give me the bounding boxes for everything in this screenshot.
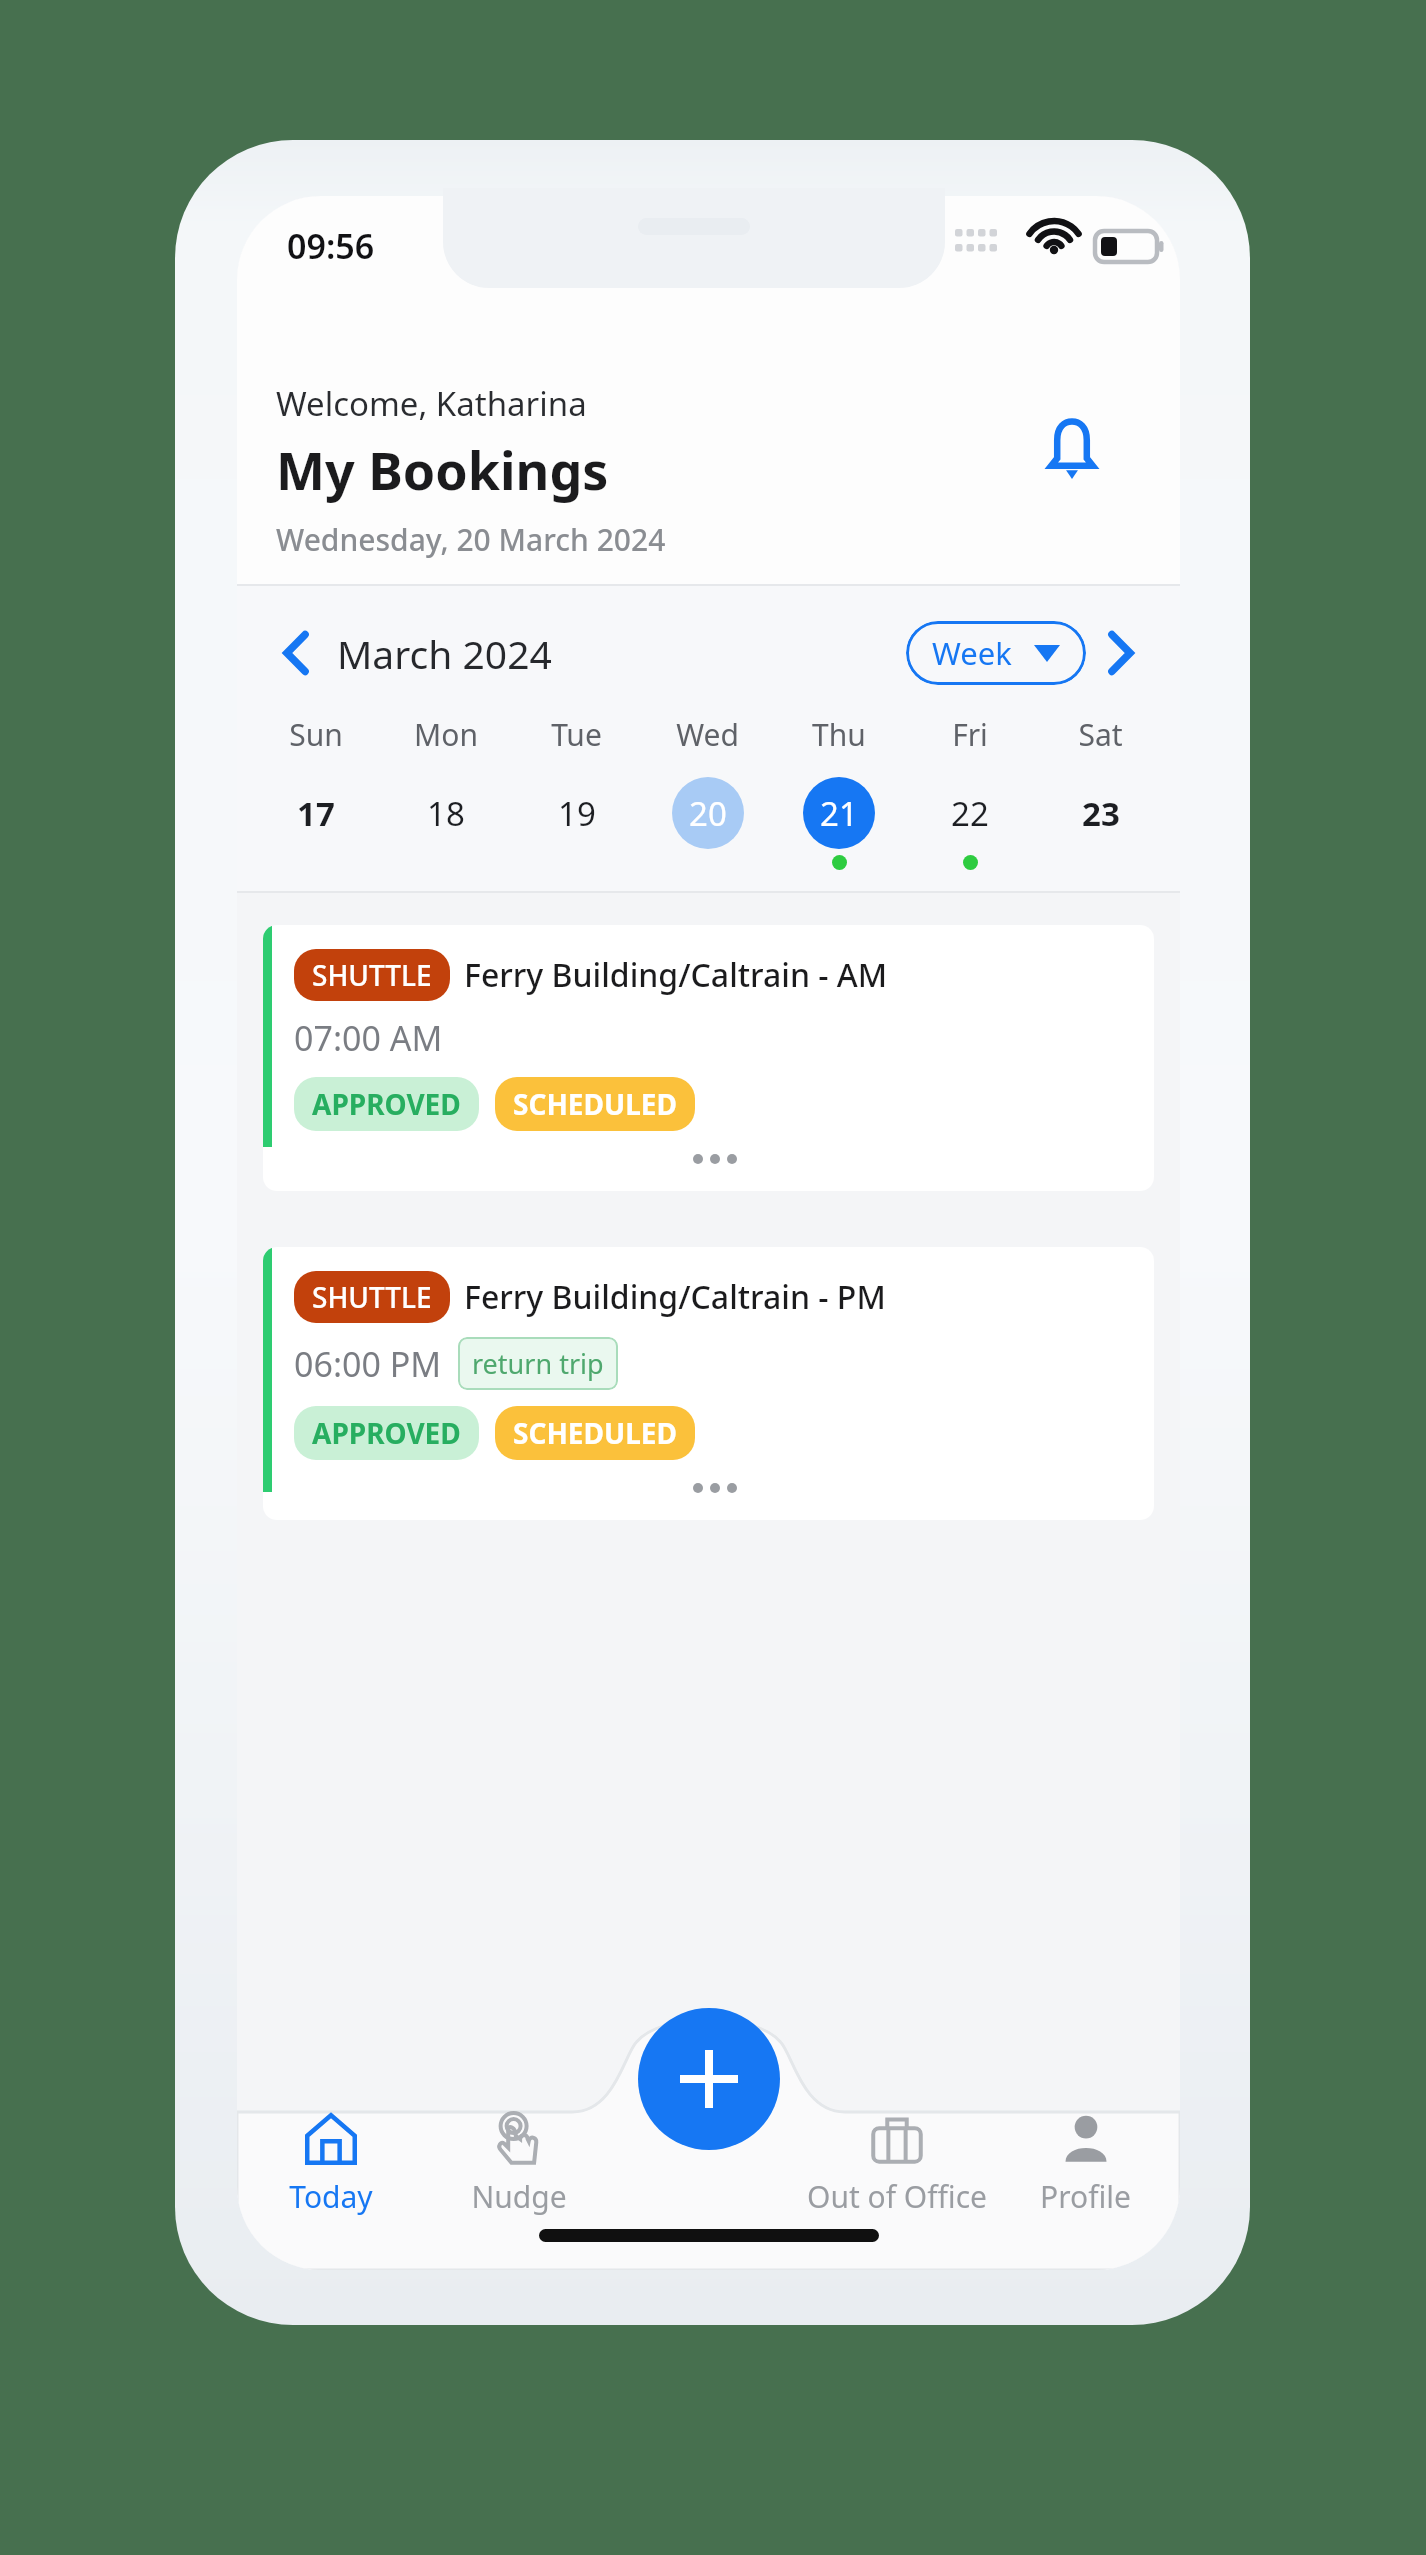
- button[interactable]: Profile: [991, 2102, 1180, 2223]
- staticText: SCHEDULED: [513, 1414, 677, 1452]
- staticText: SCHEDULED: [513, 1085, 677, 1123]
- button[interactable]: Add booking: [638, 2008, 780, 2150]
- staticText: Sun: [289, 714, 343, 755]
- button[interactable]: Thu: [773, 714, 904, 870]
- staticText: March 2024: [337, 627, 552, 680]
- staticText: 09:56: [287, 223, 375, 269]
- staticText: APPROVED: [312, 1085, 461, 1123]
- staticText: Welcome, Katharina: [276, 381, 587, 426]
- staticText: Profile: [1040, 2176, 1131, 2217]
- staticText: Tue: [551, 714, 602, 755]
- button[interactable]: Previous week: [261, 618, 331, 688]
- staticText: Ferry Building/Caltrain - AM: [464, 953, 888, 997]
- staticText: APPROVED: [312, 1414, 461, 1452]
- staticText: Thu: [812, 714, 866, 755]
- staticText: Sat: [1078, 714, 1123, 755]
- staticText: 20: [689, 791, 727, 836]
- button[interactable]: SHUTTLE: [263, 925, 1154, 1191]
- staticText: 17: [297, 791, 335, 836]
- staticText: Nudge: [471, 2176, 567, 2217]
- button[interactable]: Mon: [381, 714, 511, 870]
- staticText: Ferry Building/Caltrain - PM: [464, 1275, 886, 1319]
- staticText: 22: [951, 791, 989, 836]
- button[interactable]: More options: [680, 1470, 750, 1506]
- staticText: Wednesday, 20 March 2024: [276, 519, 666, 560]
- button[interactable]: More options: [680, 1141, 750, 1177]
- staticText: Week: [932, 632, 1012, 674]
- button[interactable]: Nudge: [425, 2102, 613, 2223]
- staticText: My Bookings: [276, 434, 609, 505]
- staticText: 21: [820, 791, 858, 836]
- button[interactable]: Sun: [251, 714, 381, 870]
- button[interactable]: SHUTTLE: [263, 1247, 1154, 1520]
- staticText: Wed: [676, 714, 739, 755]
- staticText: Fri: [952, 714, 988, 755]
- button[interactable]: Today: [237, 2102, 425, 2223]
- staticText: SHUTTLE: [312, 1278, 432, 1316]
- button[interactable]: Week: [906, 621, 1086, 685]
- staticText: 06:00 PM: [294, 1341, 442, 1387]
- button[interactable]: Out of Office: [802, 2102, 991, 2223]
- staticText: SHUTTLE: [312, 956, 432, 994]
- staticText: Out of Office: [807, 2176, 987, 2217]
- staticText: 23: [1082, 791, 1120, 836]
- staticText: Today: [289, 2176, 373, 2217]
- button[interactable]: Next week: [1086, 618, 1156, 688]
- button[interactable]: Tue: [511, 714, 642, 870]
- staticText: 07:00 AM: [294, 1015, 443, 1061]
- staticText: return trip: [472, 1345, 604, 1382]
- button[interactable]: Wed: [642, 714, 773, 870]
- button[interactable]: Fri: [904, 714, 1035, 870]
- button[interactable]: Notifications: [1017, 396, 1127, 506]
- staticText: 18: [427, 791, 465, 836]
- button[interactable]: Sat: [1035, 714, 1166, 870]
- staticText: Mon: [414, 714, 478, 755]
- staticText: 19: [558, 791, 596, 836]
